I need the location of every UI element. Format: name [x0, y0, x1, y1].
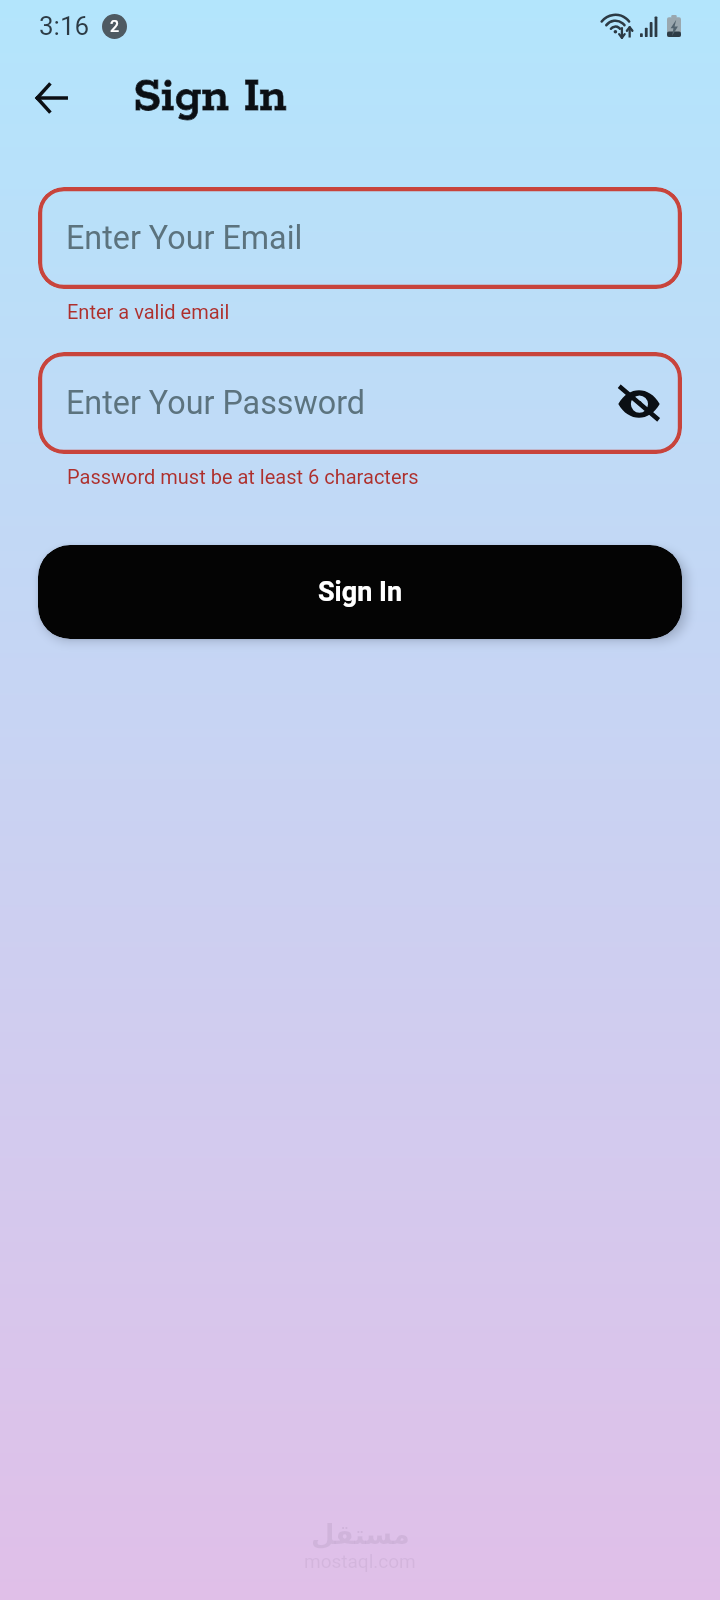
button[interactable]: Enter Your Password: [38, 352, 682, 454]
button[interactable]: Sign In: [38, 545, 682, 639]
staticText: Enter Your Email: [66, 219, 303, 257]
button[interactable]: Show password: [613, 377, 665, 429]
button[interactable]: Enter Your Email: [38, 187, 682, 289]
staticText: Sign In: [133, 69, 287, 126]
staticText: 2: [110, 17, 120, 36]
staticText: Password must be at least 6 characters: [67, 465, 419, 488]
staticText: mostaql.com: [304, 1550, 416, 1572]
button[interactable]: Back: [23, 69, 81, 127]
staticText: 3:16: [39, 11, 90, 41]
staticText: Sign In: [133, 69, 287, 126]
staticText: Enter a valid email: [67, 300, 230, 323]
staticText: مستقل: [311, 1519, 410, 1550]
staticText: Sign In: [318, 576, 403, 608]
staticText: Enter Your Password: [66, 384, 366, 422]
